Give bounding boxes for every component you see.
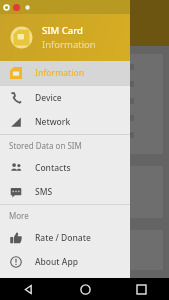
staticText: SIM Card [42, 24, 83, 37]
button[interactable]: Recent apps [113, 278, 169, 300]
button[interactable]: Network [0, 110, 130, 134]
button[interactable]: Home [57, 278, 113, 300]
staticText: Information [42, 38, 96, 51]
button[interactable]: Rate / Donate [0, 226, 130, 250]
staticText: Stored Data on SIM [9, 140, 82, 151]
button[interactable]: About App [0, 250, 130, 274]
button[interactable]: Back [0, 278, 57, 300]
staticText: SMS [35, 186, 53, 198]
staticText: Rate / Donate [35, 232, 91, 244]
staticText: Information [35, 67, 85, 79]
staticText: Device [35, 92, 62, 104]
staticText: Contacts [35, 162, 71, 174]
button[interactable]: SMS [0, 180, 130, 204]
staticText: More [9, 210, 29, 221]
button[interactable]: Information [0, 61, 130, 85]
staticText: About App [35, 256, 78, 268]
staticText: Network [35, 116, 71, 128]
button[interactable]: Device [0, 86, 130, 110]
button[interactable]: Contacts [0, 156, 130, 180]
